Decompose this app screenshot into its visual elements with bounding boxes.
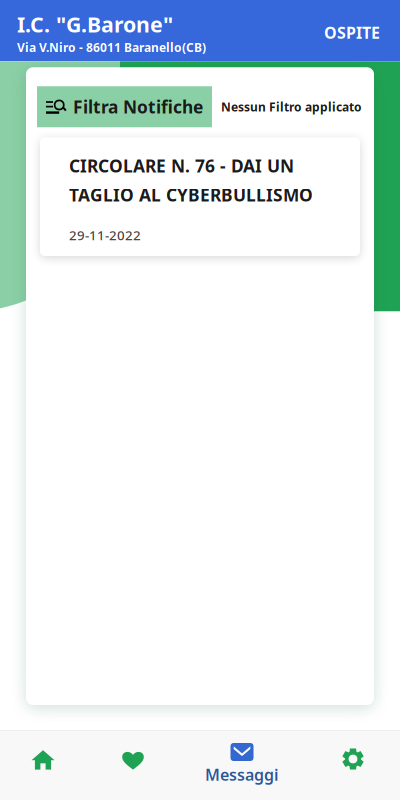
staticText: Messaggi <box>205 764 279 785</box>
staticText: Via V.Niro - 86011 Baranello(CB) <box>17 39 206 55</box>
staticText: 29-11-2022 <box>69 226 141 244</box>
button[interactable]: Home <box>0 730 86 800</box>
staticText: I.C. "G.Barone" <box>17 10 173 38</box>
staticText: Filtra Notifiche <box>73 95 203 118</box>
button[interactable]: Filtra Notifiche <box>37 86 212 127</box>
button[interactable]: Impostazioni <box>304 730 400 800</box>
staticText: CIRCOLARE N. 76 - DAI UN TAGLIO AL CYBER… <box>69 154 313 206</box>
staticText: Nessun Filtro applicato <box>221 99 362 115</box>
button[interactable]: Messaggi <box>180 730 304 800</box>
button[interactable]: CIRCOLARE N. 76 - DAI UN TAGLIO AL CYBER… <box>40 137 360 256</box>
button[interactable]: OSPITE <box>318 18 386 47</box>
button[interactable]: Preferiti <box>86 730 180 800</box>
staticText: OSPITE <box>324 22 380 43</box>
